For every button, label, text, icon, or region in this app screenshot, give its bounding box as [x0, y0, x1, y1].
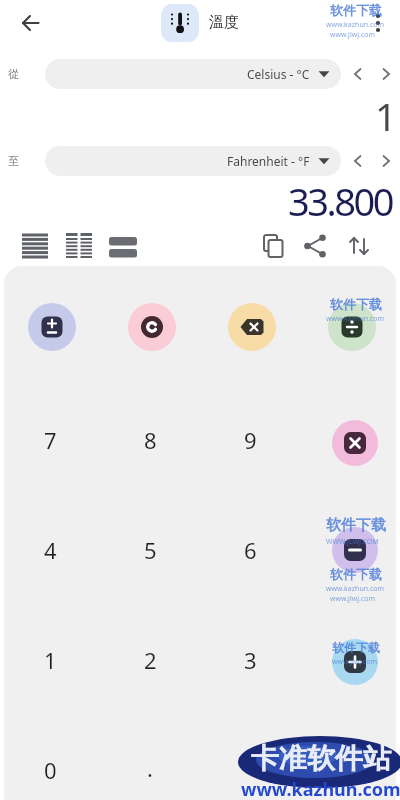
button[interactable] — [161, 4, 199, 42]
button[interactable]: 2 — [122, 632, 178, 688]
button[interactable] — [258, 231, 288, 261]
button[interactable]: Fahrenheit - °F — [45, 146, 341, 176]
staticText: 33.800 — [288, 175, 392, 227]
button[interactable] — [332, 527, 378, 573]
staticText: 1 — [44, 645, 57, 675]
button[interactable] — [14, 7, 46, 39]
staticText: 软件下载 — [330, 566, 382, 582]
staticText: www.jlwj.com — [332, 657, 378, 667]
staticText: www.jlwj.com — [330, 30, 376, 40]
button[interactable] — [332, 420, 378, 466]
staticText: 3 — [244, 645, 257, 675]
button[interactable] — [344, 231, 374, 261]
button[interactable] — [20, 231, 50, 261]
staticText: . — [147, 753, 153, 783]
button[interactable] — [374, 62, 398, 86]
button[interactable] — [128, 303, 176, 351]
staticText: 软件下载 — [330, 296, 382, 312]
staticText: www.kazhun.com — [241, 777, 400, 800]
button[interactable] — [332, 639, 378, 685]
button[interactable]: 7 — [22, 412, 78, 468]
staticText: 1 — [375, 90, 397, 142]
button[interactable]: 0 — [22, 742, 78, 798]
staticText: 4 — [44, 535, 57, 565]
staticText: 9 — [244, 425, 257, 455]
button[interactable] — [28, 303, 76, 351]
staticText: 2 — [144, 645, 157, 675]
button[interactable] — [108, 231, 138, 261]
staticText: www.jlwj.com — [330, 594, 376, 604]
staticText: 卡准软件站 — [251, 741, 391, 776]
button[interactable] — [328, 303, 376, 351]
staticText: Celsius - °C — [247, 66, 310, 82]
staticText: www.kazhun.com — [326, 20, 385, 30]
button[interactable]: 4 — [22, 522, 78, 578]
staticText: 软件下载 — [330, 2, 382, 18]
button[interactable] — [228, 303, 276, 351]
staticText: 8 — [144, 425, 157, 455]
staticText: 7 — [44, 425, 57, 455]
staticText: 從 — [8, 67, 19, 81]
button[interactable]: 8 — [122, 412, 178, 468]
button[interactable] — [346, 62, 370, 86]
button[interactable] — [300, 231, 330, 261]
button[interactable]: Celsius - °C — [45, 59, 341, 89]
staticText: 0 — [44, 755, 57, 785]
button[interactable]: 1 — [22, 632, 78, 688]
staticText: 溫度 — [209, 13, 239, 32]
staticText: 5 — [144, 535, 157, 565]
button[interactable] — [362, 7, 394, 39]
staticText: 至 — [8, 154, 19, 168]
button[interactable] — [64, 231, 94, 261]
staticText: www.kazhun.com — [326, 584, 385, 594]
button[interactable] — [374, 149, 398, 173]
button[interactable]: 9 — [222, 412, 278, 468]
staticText: 6 — [244, 535, 257, 565]
staticText: WWW.JLWJ.COM — [326, 537, 379, 547]
staticText: 软件下载 — [326, 516, 386, 535]
button[interactable]: 5 — [122, 522, 178, 578]
button[interactable]: 6 — [222, 522, 278, 578]
staticText: Fahrenheit - °F — [227, 153, 310, 169]
staticText: 软件下载 — [332, 640, 380, 655]
staticText: www.kazhun.com — [326, 314, 385, 324]
button[interactable]: 3 — [222, 632, 278, 688]
button[interactable]: . — [122, 740, 178, 796]
button[interactable] — [346, 149, 370, 173]
